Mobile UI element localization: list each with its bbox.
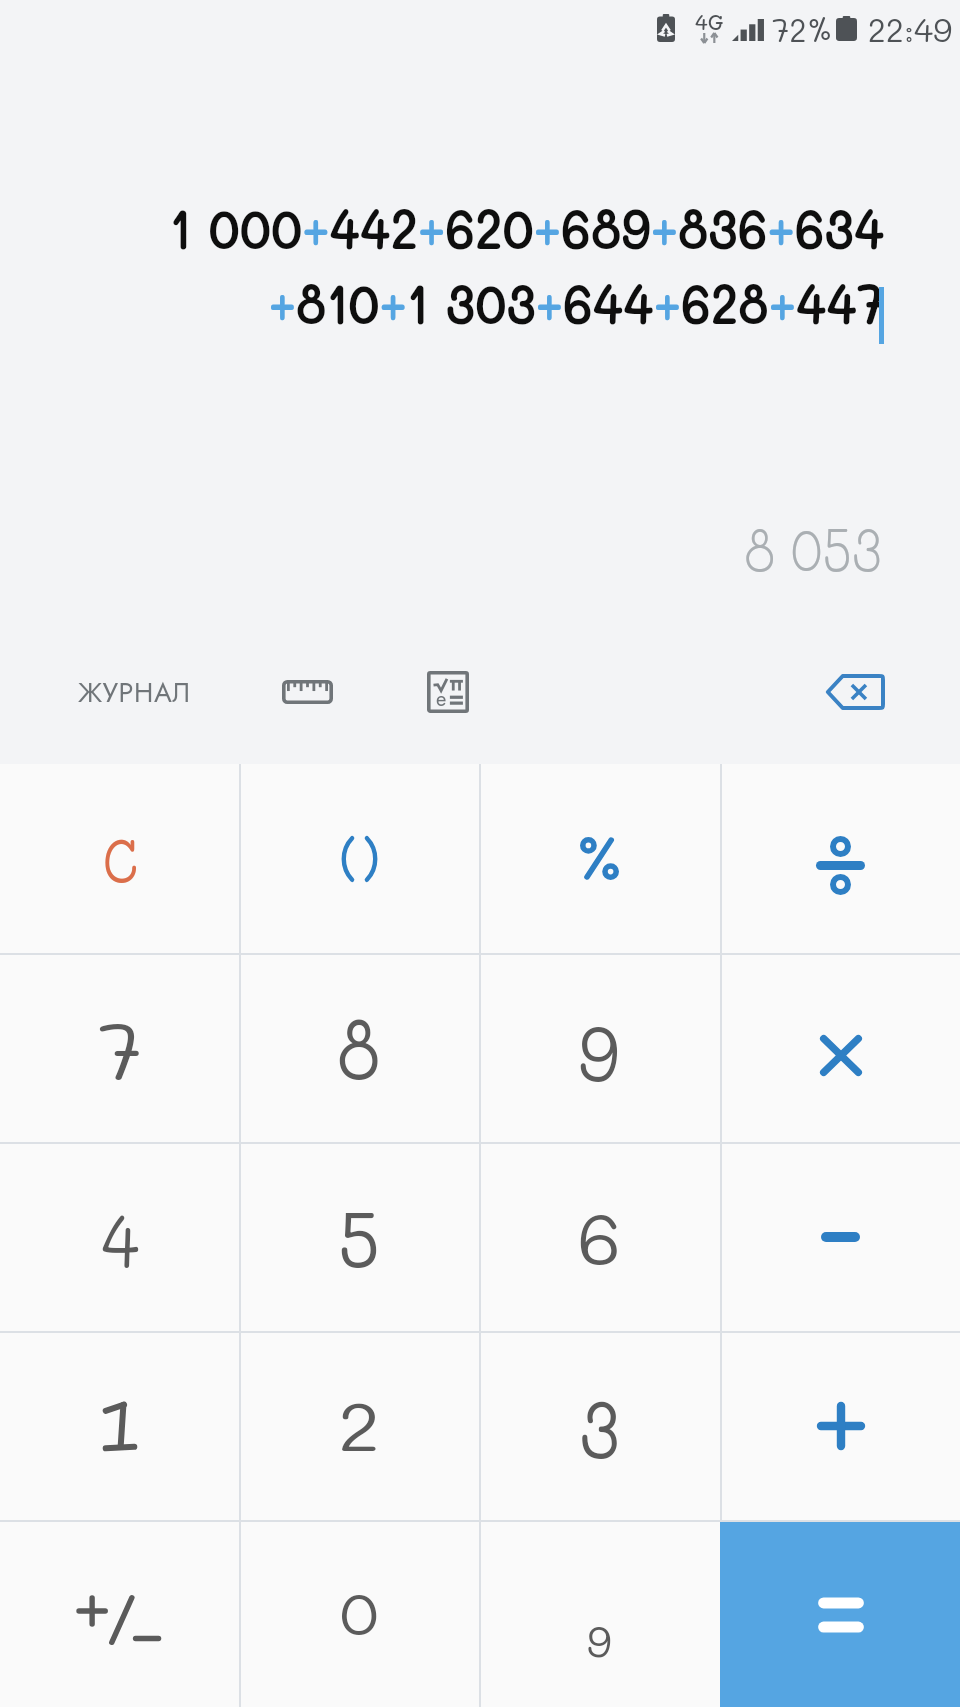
staticText: 22:49 (868, 7, 952, 50)
staticText: C (103, 820, 138, 898)
button[interactable]: 0 (239, 1520, 479, 1707)
button[interactable]: 9 (479, 953, 719, 1142)
button[interactable]: 5 (239, 1142, 479, 1331)
button[interactable]: C (0, 764, 240, 953)
button[interactable]: 2 (239, 1331, 479, 1520)
staticText: 8 053 (744, 506, 882, 588)
button[interactable] (720, 1331, 960, 1520)
button[interactable]: 3 (479, 1331, 719, 1520)
button[interactable]: 4 (0, 1142, 240, 1331)
button[interactable]: Scientific calculator (406, 650, 490, 734)
button[interactable]: Backspace (805, 648, 905, 736)
button[interactable] (479, 764, 719, 953)
button[interactable]: Unit converter (265, 650, 349, 734)
staticText: 7 (98, 996, 143, 1100)
button[interactable]: 7 (0, 953, 240, 1142)
staticText: 9 (587, 1612, 612, 1669)
button[interactable]: 9 (479, 1520, 719, 1707)
button[interactable] (720, 953, 960, 1142)
staticText: 4 (101, 1189, 140, 1287)
staticText: 9 (578, 998, 620, 1102)
button[interactable] (720, 764, 960, 953)
staticText: ЖУРНАЛ (78, 673, 191, 712)
staticText: 2 (338, 1381, 380, 1469)
button[interactable] (720, 1520, 960, 1707)
button[interactable] (0, 1520, 240, 1707)
button[interactable]: 6 (479, 1142, 719, 1331)
button[interactable]: 8 (239, 953, 479, 1142)
staticText: 0 (340, 1571, 379, 1652)
staticText: 8 (337, 988, 381, 1102)
staticText: 72% (772, 7, 833, 50)
button[interactable] (0, 1331, 240, 1520)
staticText: 5 (338, 1185, 381, 1288)
button[interactable] (720, 1142, 960, 1331)
staticText: 3 (579, 1372, 620, 1480)
button[interactable] (239, 764, 479, 953)
staticText: 4G (695, 8, 724, 35)
staticText: e (436, 685, 447, 714)
staticText: 1 000+442+620+689+836+634 (144, 189, 884, 264)
button[interactable]: ЖУРНАЛ (60, 655, 208, 729)
staticText: +810+1 303+644+628+447 (144, 264, 884, 339)
staticText: 6 (578, 1187, 621, 1283)
